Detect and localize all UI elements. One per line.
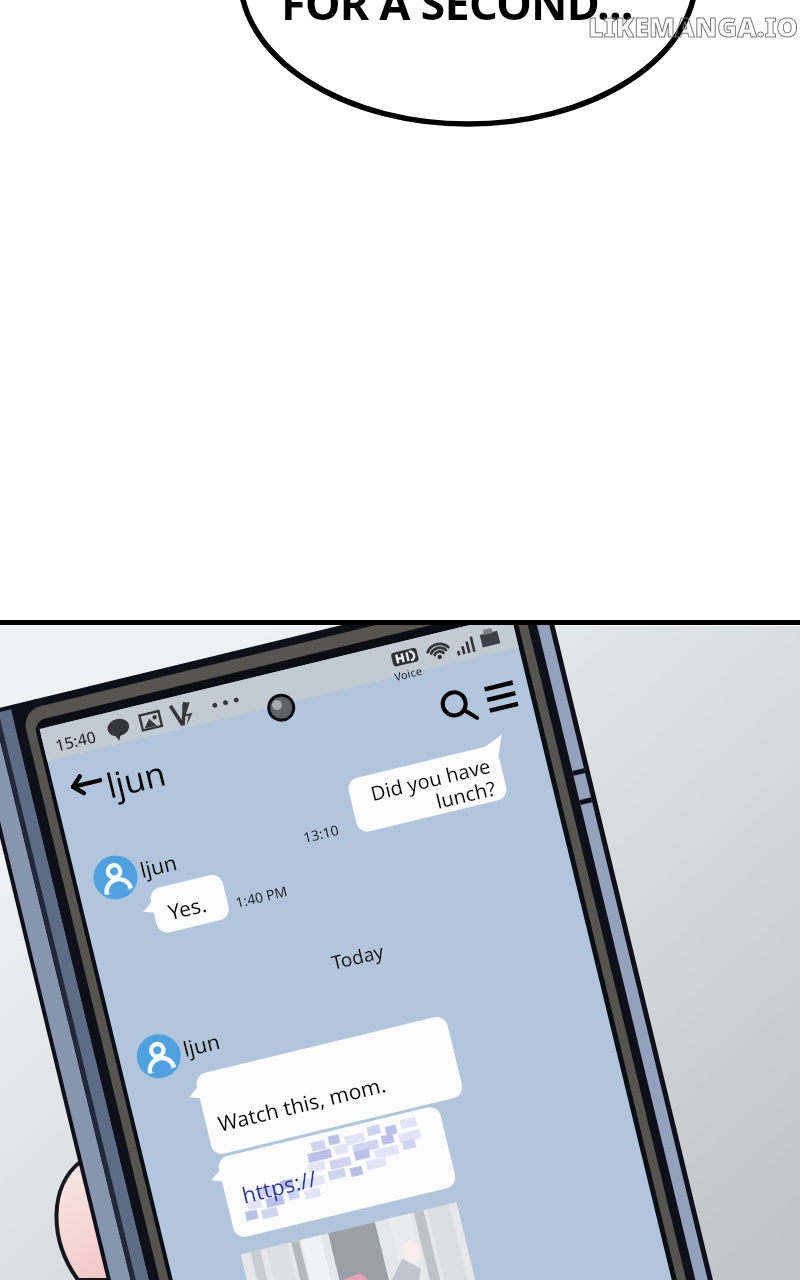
staticText: 13:10 — [301, 820, 341, 847]
staticText: Yes. — [165, 890, 210, 927]
staticText: 1:40 PM — [233, 881, 289, 912]
staticText: Watch this, mom. — [215, 1070, 389, 1139]
staticText: LIKEMANGA.IO — [588, 8, 798, 45]
staticText: Today — [329, 938, 386, 976]
staticText: https:// — [238, 1162, 319, 1209]
staticText: Voice — [393, 663, 423, 684]
staticText: ljun — [101, 750, 170, 808]
staticText: Did you have lunch? — [367, 752, 498, 829]
staticText: ljun — [180, 1027, 223, 1064]
staticText: FOR A SECOND... — [281, 0, 633, 33]
staticText: 15:40 — [53, 725, 98, 756]
staticText: ljun — [137, 848, 180, 885]
